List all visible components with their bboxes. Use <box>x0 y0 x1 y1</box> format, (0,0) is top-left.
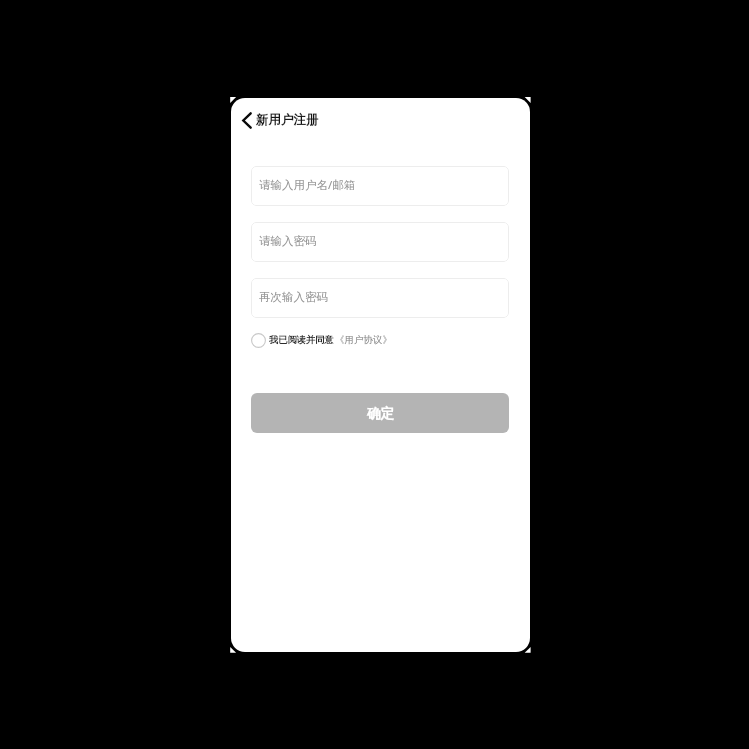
staticText: 《用户协议》 <box>335 334 392 346</box>
staticText: 确定 <box>367 405 394 422</box>
staticText: 请输入用户名/邮箱 <box>259 177 356 193</box>
staticText: 新用户注册 <box>256 112 319 128</box>
staticText: 我已阅读并同意 <box>269 334 334 346</box>
button[interactable]: 请输入用户名/邮箱 <box>251 166 509 206</box>
button[interactable]: 确定 <box>251 393 509 433</box>
button[interactable]: Back <box>238 107 256 133</box>
button[interactable]: 再次输入密码 <box>251 278 509 318</box>
button[interactable]: 请输入密码 <box>251 222 509 262</box>
staticText: 再次输入密码 <box>259 290 328 304</box>
button[interactable]: 我已阅读并同意 <box>251 330 392 350</box>
staticText: 请输入密码 <box>259 234 317 248</box>
